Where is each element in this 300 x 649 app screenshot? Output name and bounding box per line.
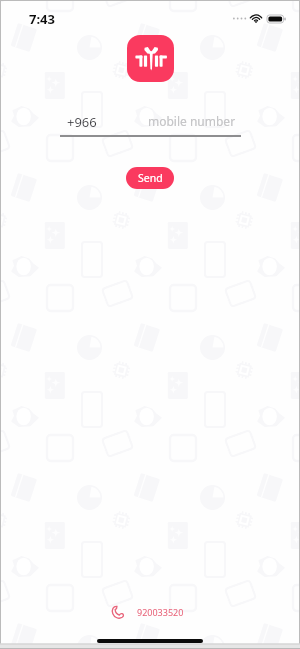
- staticText: 920033520: [137, 606, 184, 618]
- staticText: mobile number: [148, 113, 236, 129]
- button[interactable]: +966: [67, 113, 276, 131]
- staticText: 7:43: [29, 10, 55, 28]
- staticText: +966: [67, 113, 97, 131]
- button[interactable]: 920033520: [101, 601, 194, 623]
- other: App logo: [127, 35, 174, 82]
- staticText: Send: [138, 171, 163, 185]
- button[interactable]: Send: [126, 167, 174, 189]
- button[interactable]: mobile number: [148, 113, 276, 129]
